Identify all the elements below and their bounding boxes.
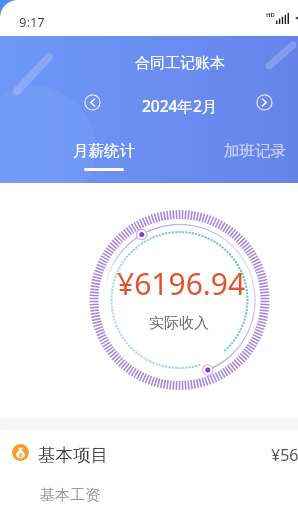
staticText: 9:17 — [19, 13, 45, 31]
button[interactable]: Next month — [256, 94, 273, 111]
staticText: 基本项目 — [38, 444, 108, 466]
staticText: 基本工资 — [40, 486, 100, 505]
staticText: HD — [266, 11, 275, 19]
staticText: 2024年2月 — [142, 95, 218, 116]
staticText: ¥6196.94 — [117, 263, 246, 304]
button[interactable]: 月薪统计 — [72, 141, 136, 171]
staticText: 合同工记账本 — [135, 54, 225, 73]
staticText: 月薪统计 — [73, 141, 135, 161]
staticText: 实际收入 — [149, 314, 209, 333]
button[interactable]: Previous month — [84, 94, 101, 111]
button[interactable]: 加班记录 — [223, 141, 287, 168]
staticText: ¥5600.00 — [271, 444, 298, 466]
staticText: 加班记录 — [224, 141, 286, 161]
button[interactable]: 基本项目 — [0, 430, 298, 475]
